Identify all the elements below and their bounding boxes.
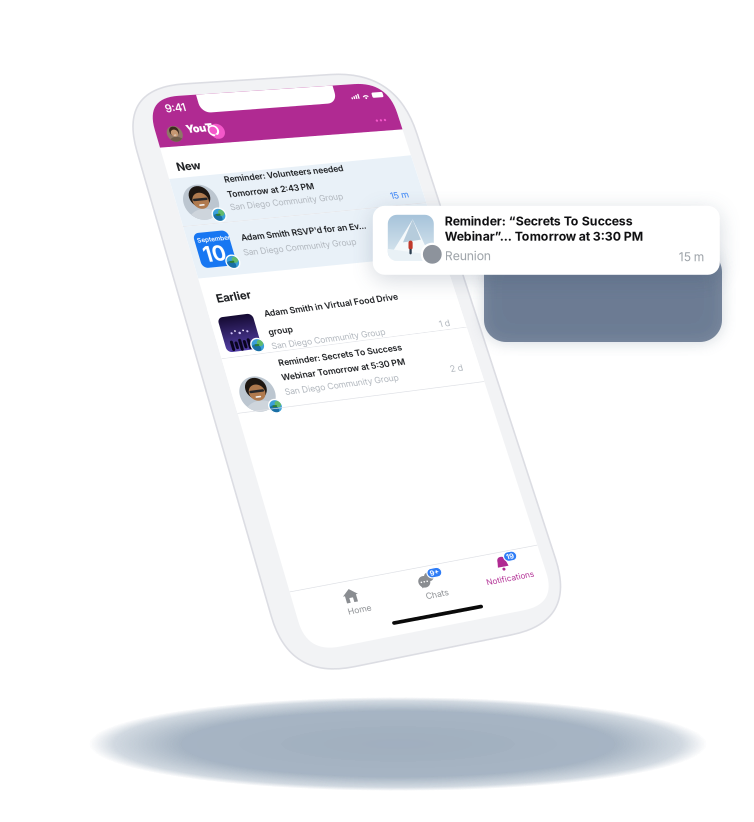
button[interactable]: Reminder: Secrets To Success xyxy=(0,0,750,822)
staticText: 15 m xyxy=(679,249,705,264)
staticText: Adam Smith RSVP'd for an Ev… xyxy=(164,428,549,459)
staticText: Tomorrow at 2:43 PM xyxy=(161,295,428,326)
button[interactable]: Reminder: “Secrets To Success xyxy=(373,206,720,275)
staticText: San Diego Community Group xyxy=(158,473,506,504)
staticText: YouT xyxy=(96,82,177,122)
button[interactable]: Adam Smith in Virtual Food Drive xyxy=(0,0,750,822)
button[interactable]: September xyxy=(0,0,750,822)
staticText: Adam Smith in Virtual Food Drive xyxy=(164,666,573,697)
staticText: San Diego Community Group xyxy=(158,334,506,365)
button[interactable]: Reminder: Volunteers needed xyxy=(0,0,750,822)
staticText: Webinar”... Tomorrow at 3:30 PM xyxy=(445,229,643,244)
staticText: Reminder: Volunteers needed xyxy=(164,250,531,281)
staticText: 15 m xyxy=(648,347,704,379)
staticText: 1 d xyxy=(671,763,704,795)
staticText: Reminder: “Secrets To Success xyxy=(445,214,633,228)
staticText: San Diego Community Group xyxy=(158,765,506,796)
staticText: Reunion xyxy=(445,248,491,263)
